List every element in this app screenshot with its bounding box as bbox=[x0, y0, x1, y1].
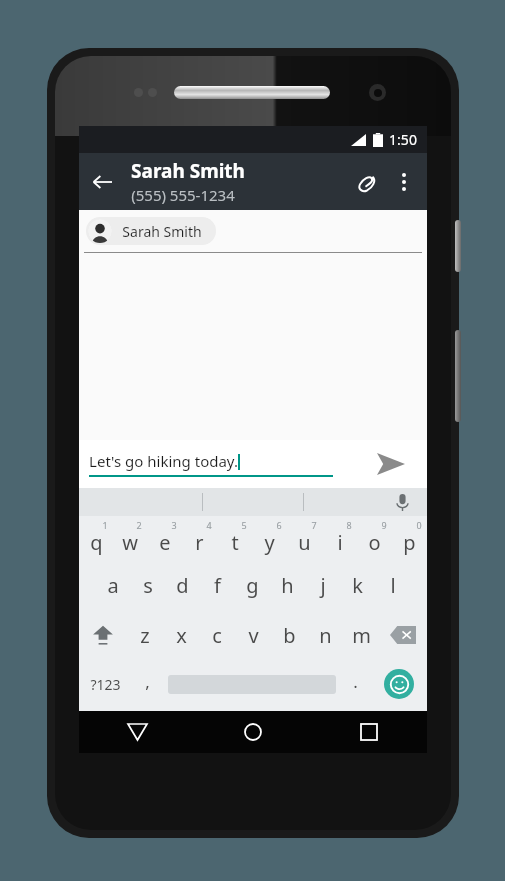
button[interactable]: d bbox=[165, 560, 200, 610]
button[interactable]: . bbox=[340, 660, 371, 708]
staticText: 8 bbox=[346, 519, 352, 531]
staticText: 5 bbox=[241, 519, 247, 531]
button[interactable]: 1 bbox=[79, 516, 113, 560]
staticText: p bbox=[403, 529, 416, 556]
staticText: w bbox=[122, 529, 138, 556]
button[interactable]: c bbox=[199, 610, 235, 660]
staticText: Sarah Smith bbox=[131, 158, 245, 184]
staticText: v bbox=[248, 622, 259, 649]
staticText: , bbox=[145, 670, 150, 693]
staticText: b bbox=[283, 622, 296, 649]
button[interactable]: ?123 bbox=[79, 660, 132, 708]
button[interactable]: Emoji bbox=[371, 660, 427, 708]
button[interactable]: Attach bbox=[347, 162, 387, 202]
button[interactable]: Backspace bbox=[379, 610, 427, 660]
staticText: Sarah Smith bbox=[122, 222, 202, 241]
button[interactable]: z bbox=[127, 610, 163, 660]
staticText: d bbox=[176, 572, 189, 599]
staticText: r bbox=[195, 529, 204, 556]
staticText: z bbox=[140, 622, 150, 649]
staticText: a bbox=[107, 572, 119, 599]
staticText: 3 bbox=[171, 519, 177, 531]
staticText: 7 bbox=[311, 519, 317, 531]
staticText: e bbox=[159, 529, 171, 556]
button[interactable]: x bbox=[163, 610, 199, 660]
staticText: s bbox=[143, 572, 153, 599]
staticText: x bbox=[176, 622, 187, 649]
staticText: f bbox=[214, 572, 221, 599]
staticText: . bbox=[353, 670, 358, 693]
button[interactable]: 6 bbox=[252, 516, 287, 560]
button[interactable]: Home bbox=[195, 711, 311, 753]
button[interactable]: v bbox=[235, 610, 271, 660]
button[interactable]: Shift bbox=[79, 610, 127, 660]
button[interactable]: Back bbox=[79, 711, 195, 753]
button[interactable]: g bbox=[235, 560, 270, 610]
button[interactable]: 2 bbox=[113, 516, 147, 560]
button[interactable]: 5 bbox=[217, 516, 252, 560]
button[interactable]: 4 bbox=[182, 516, 217, 560]
button[interactable]: a bbox=[96, 560, 130, 610]
button[interactable]: f bbox=[200, 560, 235, 610]
button[interactable]: Recent apps bbox=[311, 711, 427, 753]
button[interactable]: 8 bbox=[322, 516, 357, 560]
staticText: 4 bbox=[206, 519, 212, 531]
staticText: g bbox=[246, 572, 259, 599]
staticText: 1 bbox=[102, 519, 108, 531]
button[interactable]: n bbox=[307, 610, 343, 660]
button[interactable]: l bbox=[375, 560, 410, 610]
staticText: t bbox=[231, 529, 239, 556]
button[interactable]: m bbox=[343, 610, 379, 660]
button[interactable]: Sarah Smith bbox=[86, 217, 216, 245]
staticText: m bbox=[352, 622, 371, 649]
button[interactable]: Space bbox=[163, 660, 340, 708]
button[interactable]: Send bbox=[369, 442, 413, 486]
staticText: k bbox=[352, 572, 363, 599]
button[interactable]: k bbox=[340, 560, 375, 610]
staticText: y bbox=[264, 529, 275, 556]
button[interactable]: 3 bbox=[147, 516, 182, 560]
staticText: n bbox=[319, 622, 332, 649]
button[interactable]: j bbox=[305, 560, 340, 610]
staticText: Let's go hiking today. bbox=[89, 451, 238, 471]
button[interactable]: 7 bbox=[287, 516, 322, 560]
button[interactable]: , bbox=[132, 660, 163, 708]
button[interactable]: s bbox=[130, 560, 165, 610]
staticText: 6 bbox=[276, 519, 282, 531]
staticText: j bbox=[320, 572, 326, 599]
button[interactable]: 0 bbox=[392, 516, 427, 560]
staticText: l bbox=[390, 572, 396, 599]
staticText: o bbox=[368, 529, 381, 556]
staticText: ?123 bbox=[90, 675, 121, 694]
staticText: (555) 555-1234 bbox=[131, 185, 235, 205]
staticText: i bbox=[337, 529, 343, 556]
staticText: 0 bbox=[416, 519, 422, 531]
button[interactable]: h bbox=[270, 560, 305, 610]
button[interactable]: More options bbox=[387, 165, 421, 199]
staticText: h bbox=[281, 572, 294, 599]
button[interactable]: 9 bbox=[357, 516, 392, 560]
staticText: c bbox=[212, 622, 222, 649]
staticText: 9 bbox=[381, 519, 387, 531]
button[interactable]: Back bbox=[79, 159, 125, 205]
staticText: 1:50 bbox=[389, 130, 417, 149]
staticText: 2 bbox=[136, 519, 142, 531]
staticText: q bbox=[90, 529, 103, 556]
button[interactable]: Voice input bbox=[389, 489, 415, 515]
staticText: u bbox=[298, 529, 311, 556]
button[interactable]: b bbox=[271, 610, 307, 660]
